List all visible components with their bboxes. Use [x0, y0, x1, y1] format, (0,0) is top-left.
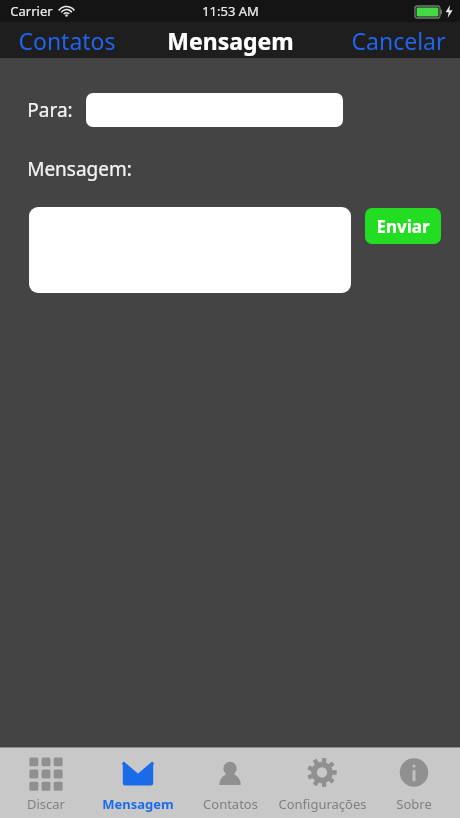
button[interactable]: Contatos: [0, 23, 124, 58]
staticText: Mensagem: [102, 795, 174, 813]
staticText: Para:: [27, 97, 73, 123]
staticText: Configurações: [278, 795, 367, 813]
staticText: 11:53 AM: [202, 2, 259, 20]
staticText: Sobre: [396, 795, 432, 813]
button[interactable]: Discar: [0, 748, 92, 818]
button[interactable]: [29, 207, 351, 293]
staticText: Mensagem: [167, 25, 294, 56]
staticText: Carrier: [10, 2, 53, 20]
button[interactable]: Cancelar: [343, 23, 460, 58]
button[interactable]: Contatos: [184, 748, 276, 818]
button[interactable]: Enviar: [365, 208, 441, 244]
button[interactable]: Configurações: [276, 748, 368, 818]
staticText: Discar: [27, 795, 65, 813]
staticText: Mensagem:: [27, 156, 132, 182]
staticText: Contatos: [203, 795, 258, 813]
button[interactable]: Sobre: [368, 748, 460, 818]
button[interactable]: Mensagem: [92, 748, 184, 818]
staticText: Cancelar: [351, 25, 446, 56]
staticText: Contatos: [18, 25, 116, 56]
button[interactable]: [86, 93, 343, 127]
staticText: Enviar: [376, 215, 430, 238]
